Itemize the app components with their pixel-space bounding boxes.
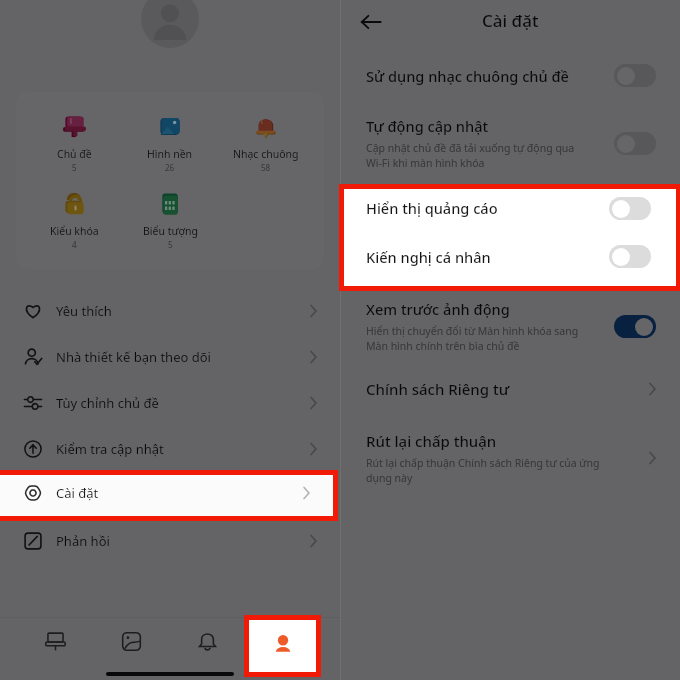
button[interactable]: Phản hồi [0, 518, 340, 564]
button[interactable]: Rút lại chấp thuận [340, 412, 680, 503]
staticText: Cập nhật chủ đề đã tải xuống tự động qua… [366, 141, 575, 170]
staticText: Xem trước ảnh động [366, 299, 510, 319]
button[interactable]: Toggle [609, 245, 651, 268]
staticText: Hình nền [147, 147, 193, 161]
staticText: Rút lại chấp thuận [366, 431, 497, 451]
staticText: Chủ đề [57, 147, 92, 161]
staticText: 58 [261, 162, 271, 173]
button[interactable]: Toggle [614, 64, 656, 87]
button[interactable]: Themes [17, 618, 93, 664]
staticText: Hiển thị chuyển đổi từ Màn hình khóa san… [366, 324, 579, 353]
button[interactable]: Tự động cập nhật [340, 102, 680, 184]
staticText: Cài đặt [56, 484, 99, 502]
button[interactable]: Avatar [141, 0, 199, 48]
button[interactable]: Hiển thị quảng cáo [340, 184, 680, 232]
staticText: Tự động cập nhật [366, 116, 489, 136]
button[interactable]: Hiển thị quảng cáo [345, 189, 675, 232]
staticText: 5 [72, 162, 77, 173]
button[interactable]: Profile [246, 618, 323, 664]
staticText: Kiến nghị cá nhân [366, 249, 491, 269]
staticText: Phản hồi [56, 532, 110, 550]
staticText: Kiến nghị cá nhân [366, 247, 491, 267]
button[interactable]: Cài đặt [0, 472, 340, 518]
staticText: 4 [72, 239, 77, 250]
staticText: Tùy chỉnh chủ đề [56, 394, 159, 412]
staticText: Chính sách Riêng tư [366, 379, 510, 399]
button[interactable]: Toggle [614, 132, 656, 155]
button[interactable]: Chính sách Riêng tư [340, 366, 680, 412]
staticText: Hiển thị quảng cáo [366, 198, 498, 218]
button[interactable]: Xem trước ảnh động [340, 286, 680, 366]
button[interactable]: Notifications [169, 618, 246, 664]
staticText: Rút lại chấp thuận Chính sách Riêng tư c… [366, 456, 600, 485]
button[interactable]: Wallpapers [93, 618, 169, 664]
staticText: 5 [168, 239, 173, 250]
staticText: Nhà thiết kế bạn theo dõi [56, 348, 211, 366]
button[interactable]: Hình nền [122, 115, 218, 173]
button[interactable]: Kiểm tra cập nhật [0, 426, 340, 472]
button[interactable]: Cài đặt [0, 475, 333, 513]
staticText: Cài đặt [482, 9, 539, 32]
button[interactable]: Kiến nghị cá nhân [340, 232, 680, 286]
staticText: 26 [165, 162, 175, 173]
button[interactable]: Kiểu khóa [26, 192, 122, 250]
button[interactable]: Tùy chỉnh chủ đề [0, 380, 340, 426]
button[interactable]: Sử dụng nhạc chuông chủ đề [340, 49, 680, 102]
button[interactable]: Nhà thiết kế bạn theo dõi [0, 334, 340, 380]
staticText: Nhạc chuông [233, 147, 299, 161]
button[interactable]: Toggle [609, 197, 651, 220]
staticText: Hiển thị quảng cáo [366, 198, 498, 218]
staticText: Biểu tượng [143, 224, 198, 238]
button[interactable]: Profile [249, 620, 316, 672]
button[interactable]: Toggle [614, 315, 656, 338]
staticText: Sử dụng nhạc chuông chủ đề [366, 66, 569, 86]
button[interactable]: Biểu tượng [122, 192, 218, 250]
staticText: Kiểu khóa [50, 224, 99, 238]
button[interactable]: Yêu thích [0, 288, 340, 334]
staticText: Cài đặt [56, 486, 99, 504]
staticText: Kiểm tra cập nhật [56, 440, 164, 458]
button[interactable]: Back [356, 7, 386, 37]
button[interactable]: Toggle [614, 197, 656, 220]
button[interactable]: Kiến nghị cá nhân [345, 232, 675, 281]
button[interactable]: Nhạc chuông [218, 115, 314, 173]
button[interactable]: Toggle [614, 248, 656, 271]
button[interactable]: Chủ đề [26, 115, 122, 173]
staticText: Yêu thích [56, 302, 112, 320]
